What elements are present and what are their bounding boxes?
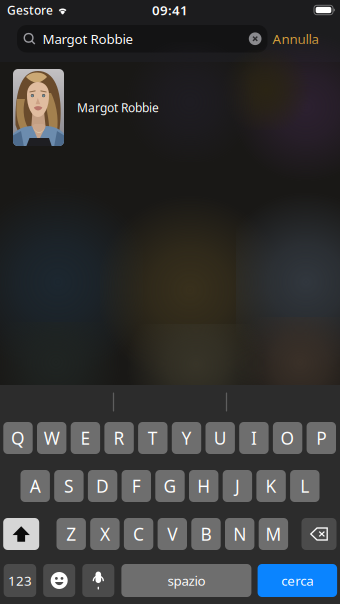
- staticText: Margot Robbie: [42, 30, 133, 48]
- staticText: L: [300, 474, 309, 497]
- button[interactable]: Emoji: [43, 564, 75, 597]
- button[interactable]: E: [71, 422, 100, 454]
- staticText: cerca: [281, 572, 313, 589]
- button[interactable]: U: [205, 422, 235, 454]
- staticText: S: [64, 474, 74, 497]
- staticText: Z: [66, 522, 76, 545]
- button[interactable]: Annulla: [267, 25, 323, 52]
- button[interactable]: O: [273, 422, 302, 454]
- button[interactable]: I: [239, 422, 269, 454]
- staticText: Annulla: [272, 30, 318, 48]
- staticText: D: [96, 474, 109, 497]
- staticText: 123: [8, 572, 32, 589]
- button[interactable]: F: [122, 470, 151, 502]
- button[interactable]: Y: [172, 422, 201, 454]
- button[interactable]: Shift: [3, 518, 39, 550]
- button[interactable]: M: [259, 518, 288, 550]
- staticText: Y: [181, 426, 191, 449]
- button[interactable]: A: [20, 470, 50, 502]
- staticText: V: [167, 522, 177, 545]
- staticText: A: [30, 474, 41, 497]
- staticText: B: [200, 522, 211, 545]
- button[interactable]: K: [256, 470, 286, 502]
- staticText: K: [266, 474, 277, 497]
- staticText: 09:41: [152, 1, 188, 19]
- button[interactable]: C: [124, 518, 153, 550]
- button[interactable]: Space: [121, 564, 251, 597]
- button[interactable]: T: [138, 422, 167, 454]
- staticText: M: [265, 522, 281, 545]
- button[interactable]: N: [225, 518, 254, 550]
- button[interactable]: D: [88, 470, 117, 502]
- button[interactable]: V: [158, 518, 187, 550]
- staticText: G: [163, 474, 176, 497]
- staticText: spazio: [167, 572, 205, 589]
- button[interactable]: Search: [258, 564, 337, 597]
- staticText: Margot Robbie: [77, 99, 159, 115]
- staticText: E: [80, 426, 90, 449]
- button[interactable]: Margot Robbie: [17, 25, 267, 52]
- button[interactable]: S: [54, 470, 84, 502]
- staticText: W: [44, 426, 60, 449]
- button[interactable]: P: [307, 422, 336, 454]
- button[interactable]: Dictation: [82, 564, 114, 597]
- staticText: U: [214, 426, 227, 449]
- button[interactable]: Margot Robbie: [0, 69, 340, 146]
- button[interactable]: X: [90, 518, 120, 550]
- button[interactable]: B: [191, 518, 221, 550]
- staticText: X: [100, 522, 110, 545]
- button[interactable]: H: [189, 470, 218, 502]
- button[interactable]: G: [155, 470, 185, 502]
- button[interactable]: W: [37, 422, 66, 454]
- staticText: Gestore: [7, 2, 53, 18]
- staticText: T: [148, 426, 158, 449]
- staticText: J: [235, 474, 240, 497]
- staticText: I: [251, 426, 257, 449]
- button[interactable]: L: [290, 470, 319, 502]
- staticText: P: [316, 426, 326, 449]
- button[interactable]: Numbers: [4, 564, 36, 597]
- button[interactable]: Z: [56, 518, 86, 550]
- staticText: F: [132, 474, 141, 497]
- staticText: O: [281, 426, 295, 449]
- button[interactable]: J: [223, 470, 252, 502]
- staticText: Q: [11, 426, 25, 449]
- staticText: H: [197, 474, 210, 497]
- button[interactable]: R: [104, 422, 134, 454]
- staticText: R: [114, 426, 125, 449]
- staticText: C: [133, 522, 144, 545]
- button[interactable]: Q: [3, 422, 33, 454]
- staticText: N: [233, 522, 246, 545]
- button[interactable]: Backspace: [301, 518, 336, 550]
